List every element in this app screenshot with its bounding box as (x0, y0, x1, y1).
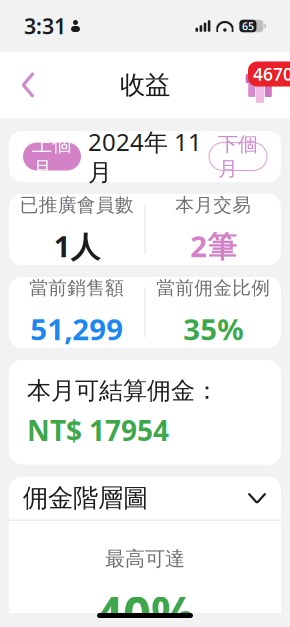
staticText: 4670 (253, 62, 290, 85)
staticText: 2024年 11月 (88, 126, 202, 187)
staticText: 65 (242, 19, 254, 33)
staticText: 40% (95, 581, 195, 627)
button[interactable]: Gems, 4670 (232, 63, 284, 107)
staticText: 收益 (120, 69, 170, 100)
staticText: 上個月 (32, 132, 72, 181)
button[interactable]: Back (6, 63, 50, 107)
button[interactable]: 上個月 (23, 142, 81, 170)
staticText: 當前佣金比例 (156, 277, 270, 299)
staticText: 下個月 (218, 132, 258, 181)
staticText: 2筆 (190, 226, 236, 265)
button[interactable]: 下個月 (209, 142, 267, 170)
staticText: 最高可達 (105, 547, 185, 571)
staticText: 本月交易 (175, 194, 251, 216)
staticText: NT$ 17954 (27, 411, 169, 449)
staticText: 35% (183, 309, 243, 348)
staticText: 當前銷售額 (29, 277, 124, 299)
staticText: 51,299 (30, 309, 123, 348)
staticText: 佣金階層圖 (23, 483, 148, 514)
button[interactable]: 佣金階層圖 (9, 477, 281, 520)
staticText: 3:31 (24, 12, 66, 40)
staticText: 1人 (54, 226, 100, 265)
staticText: 已推廣會員數 (20, 194, 134, 216)
staticText: 本月可結算佣金： (27, 376, 219, 405)
